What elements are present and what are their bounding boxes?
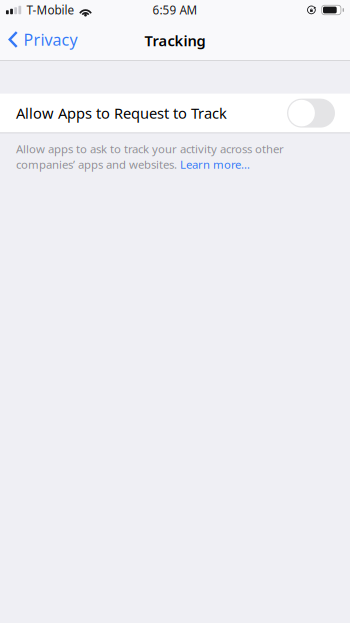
button[interactable]: Allow Apps to Request to Track [0,94,350,133]
button[interactable]: Privacy [0,24,87,57]
button[interactable]: Allow Apps to Request to Track [287,99,335,128]
staticText: Privacy [23,29,77,50]
staticText: Allow Apps to Request to Track [16,103,227,123]
staticText: Tracking [144,31,205,50]
staticText: T-Mobile [27,2,75,18]
staticText: Allow apps to ask to track your activity… [16,141,284,172]
staticText: 6:59 AM [152,2,197,18]
